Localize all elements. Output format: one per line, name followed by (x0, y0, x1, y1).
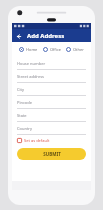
staticText: Add Address (27, 32, 65, 40)
staticText: Set as default (24, 138, 50, 143)
staticText: House number (17, 61, 46, 66)
staticText: State (17, 113, 27, 118)
button[interactable]: State (17, 109, 86, 122)
staticText: Office (50, 47, 62, 52)
staticText: Street address (17, 74, 45, 79)
staticText: SUBMIT (43, 151, 61, 157)
staticText: Country (17, 126, 33, 131)
button[interactable]: Pincode (17, 96, 86, 109)
button[interactable]: City (17, 83, 86, 96)
button[interactable]: Back (14, 32, 22, 40)
button[interactable]: SUBMIT (17, 148, 86, 160)
button[interactable]: House number (17, 57, 86, 70)
staticText: Home (26, 47, 38, 52)
button[interactable]: Country (17, 122, 86, 135)
button[interactable]: Other (65, 46, 85, 53)
button[interactable]: Set as default (17, 137, 50, 144)
button[interactable]: Street address (17, 70, 86, 83)
button[interactable]: Office (42, 46, 63, 53)
staticText: Other (73, 47, 84, 52)
staticText: City (17, 87, 25, 92)
staticText: Pincode (17, 100, 32, 105)
button[interactable]: Home (18, 46, 39, 53)
